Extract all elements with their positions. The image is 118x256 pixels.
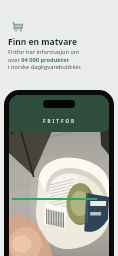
staticText: Fritfor har informasjon om over 94 000 p…	[8, 48, 82, 70]
button[interactable]: Handlekurv	[12, 22, 24, 32]
staticText: Finn en matvare	[8, 36, 77, 48]
staticText: F R I T F O R	[43, 118, 75, 124]
